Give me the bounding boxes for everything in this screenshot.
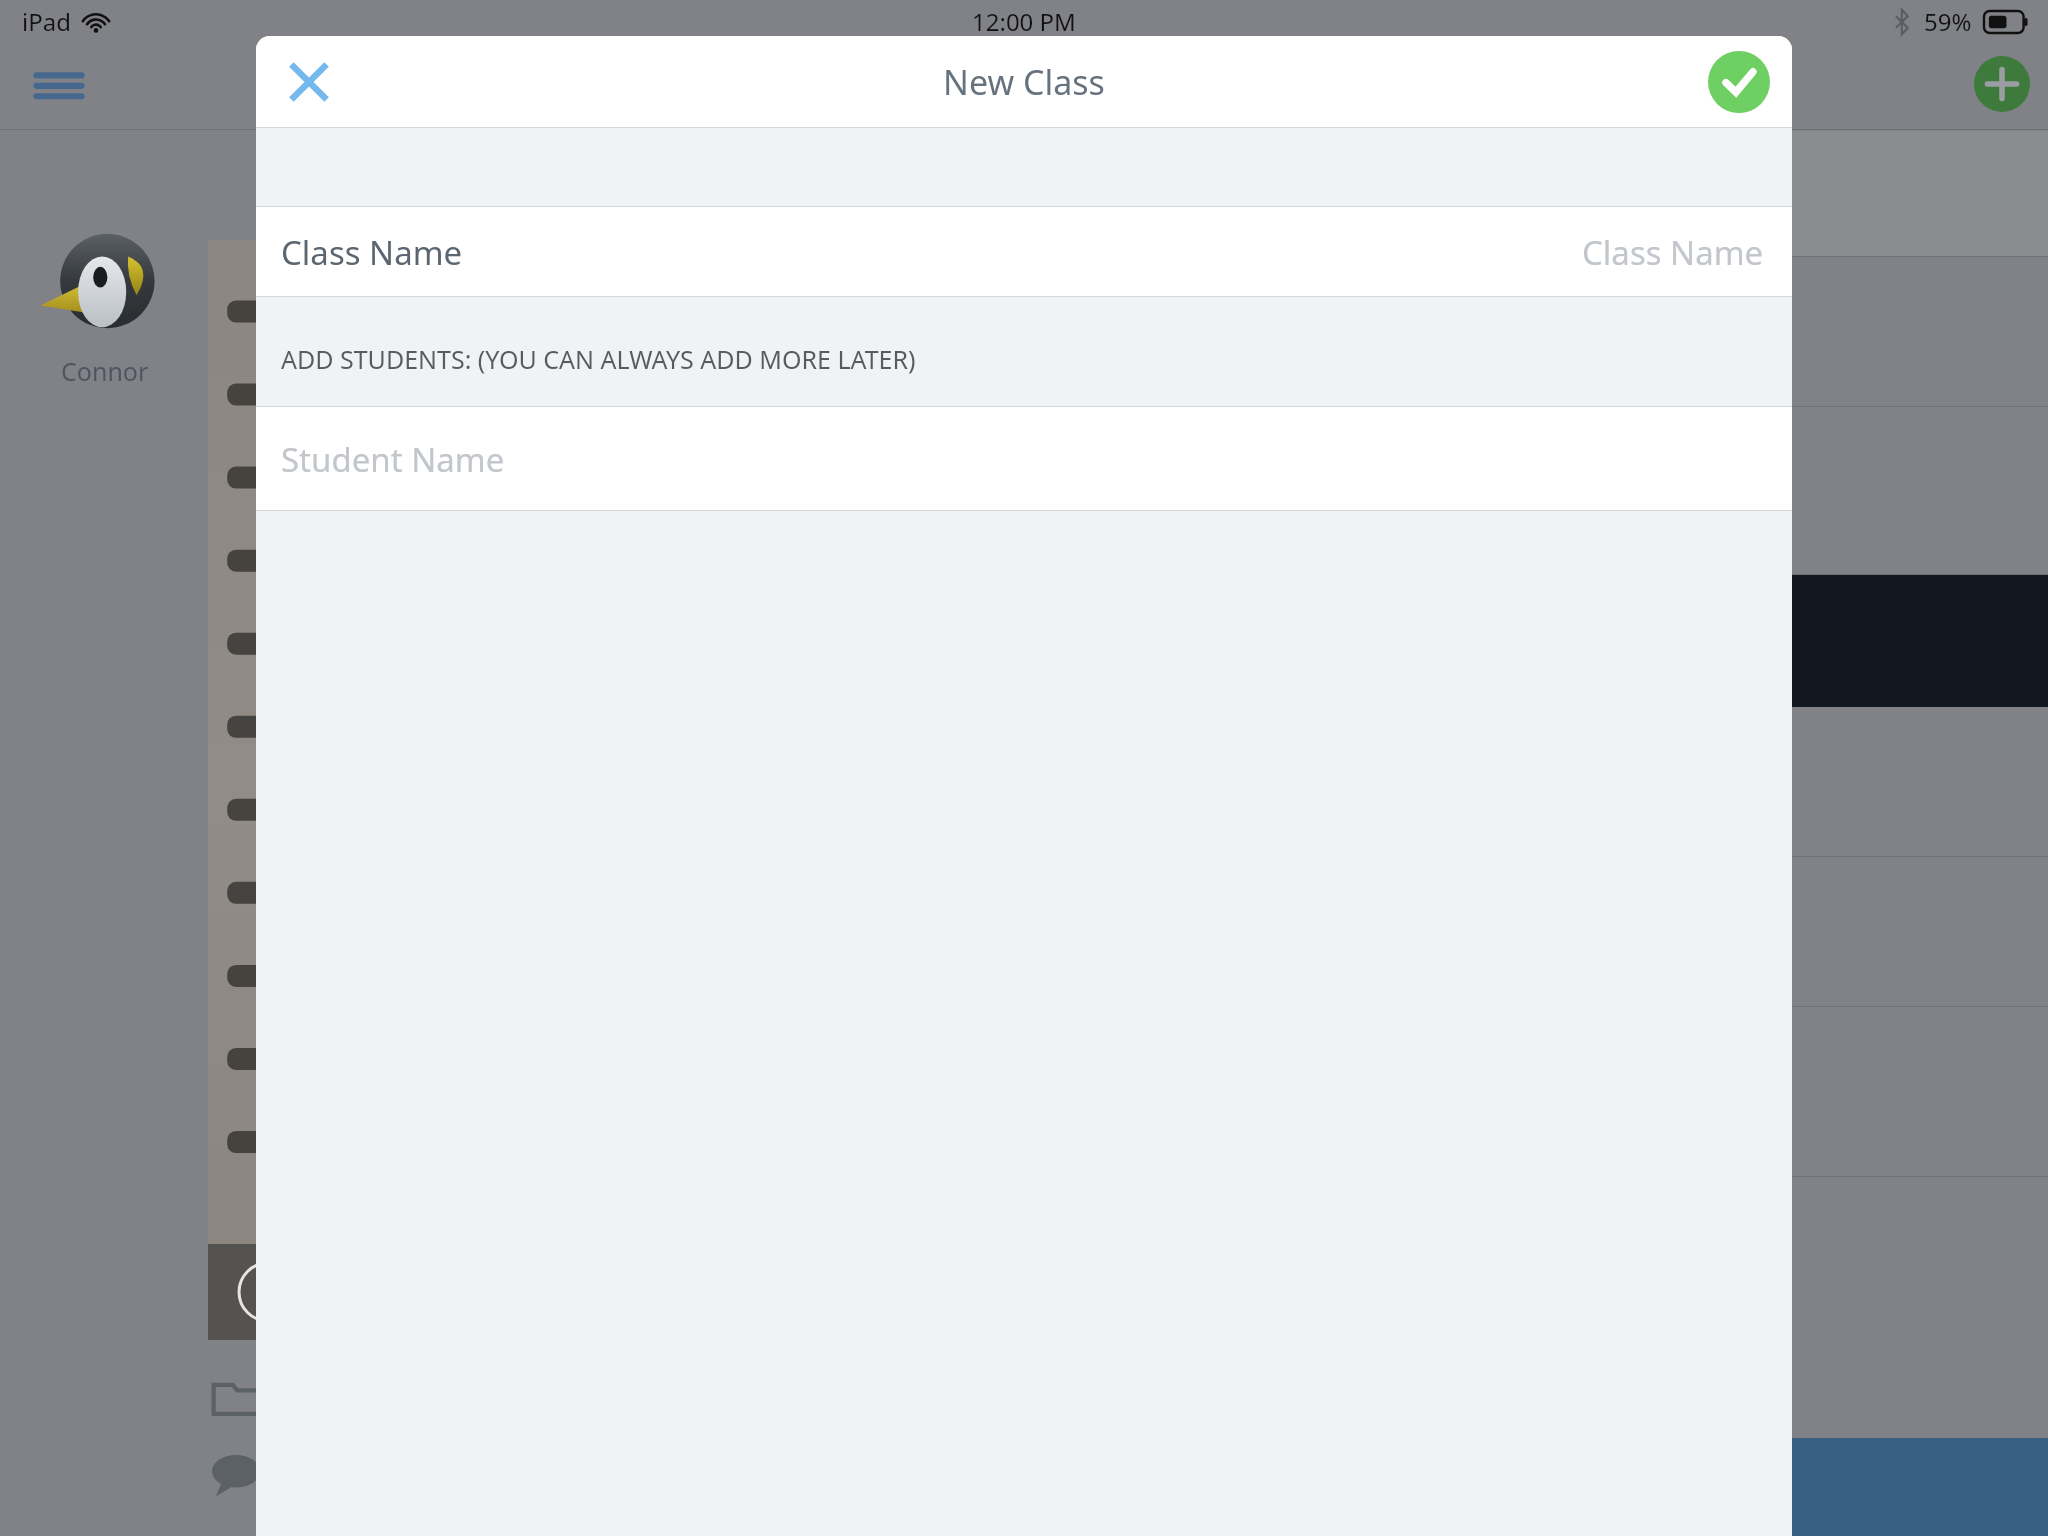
staticText: New Class	[943, 59, 1105, 105]
button[interactable]: Folder	[208, 1368, 264, 1424]
staticText: 12:00 PM	[972, 5, 1076, 38]
staticText: Class Name	[1582, 230, 1764, 275]
button[interactable]: Comments	[208, 1446, 264, 1502]
button[interactable]: Add	[1974, 56, 2030, 112]
button[interactable]: Student Name	[256, 407, 1792, 511]
button[interactable]: r Resources	[1348, 1438, 2048, 1536]
button[interactable]: Menu	[30, 58, 88, 116]
button[interactable]: Class Name	[256, 207, 1792, 297]
staticText: Connor	[61, 354, 149, 388]
staticText: Class Name	[281, 230, 463, 275]
button[interactable]: Save	[1708, 51, 1770, 113]
button[interactable]: Close	[270, 43, 348, 121]
staticText: Student Name	[281, 437, 505, 482]
staticText: 59%	[1924, 5, 1972, 38]
staticText: iPad	[22, 5, 71, 38]
staticText: ADD STUDENTS: (YOU CAN ALWAYS ADD MORE L…	[281, 342, 916, 376]
